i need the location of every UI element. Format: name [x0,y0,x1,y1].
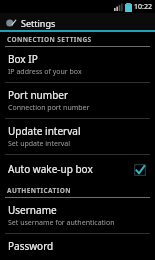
staticText: Auto wake-up box [8,162,133,176]
staticText: AUTHENTICATION [7,186,71,195]
other: Auto wake-up box checkbox, checked [133,163,146,176]
staticText: CONNECTION SETTINGS [7,35,92,44]
staticText: 10:22 [134,2,152,12]
button[interactable]: Auto wake-up box [0,155,155,183]
staticText: Set update interval [8,139,71,149]
staticText: Port number [8,88,69,102]
staticText: Box IP [8,52,38,66]
staticText: Settings [21,17,56,29]
staticText: Connection port number [8,103,90,113]
button[interactable]: Port number [0,83,155,118]
staticText: Set username for authentication [8,218,115,228]
staticText: Username [8,203,57,217]
button[interactable]: Update interval [0,119,155,154]
staticText: IP address of your box [8,67,82,77]
staticText: Update interval [8,124,81,138]
button[interactable]: Password [0,234,155,260]
staticText: Password [8,239,54,253]
button[interactable]: Box IP [0,47,155,82]
button[interactable]: Navigate up [3,15,18,30]
button[interactable]: Username [0,198,155,233]
